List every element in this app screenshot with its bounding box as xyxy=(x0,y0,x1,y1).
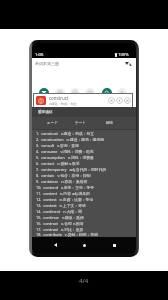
staticText: 1. construct v.建造；构成；创立 xyxy=(36,131,95,136)
button[interactable]: Info xyxy=(85,88,95,98)
button[interactable]: 14. continent n.大陆；洲 xyxy=(32,208,136,214)
button[interactable]: 1. construct v.建造；构成；创立 xyxy=(32,130,136,136)
button[interactable]: 9. container n.容器；集装箱 xyxy=(32,178,136,184)
staticText: 3. consult v.咨询；查阅 xyxy=(36,143,79,148)
button[interactable]: Next xyxy=(124,97,131,104)
staticText: 17. contrast n.对比；差异 xyxy=(36,227,84,232)
staticText: 18. contribute v.贡献；捐助；投稿 xyxy=(36,232,99,237)
button[interactable]: Play xyxy=(116,97,123,104)
button[interactable]: 6. contact n.接触 v.联系 xyxy=(32,160,136,166)
button[interactable]: 18. contribute v.贡献；捐助；投稿 xyxy=(32,232,136,237)
staticText: 解除 xyxy=(106,121,114,126)
button[interactable]: Home xyxy=(77,238,91,252)
button[interactable]: 7. contemporary adj.当代的；同时代的 xyxy=(32,166,136,172)
button[interactable]: 12. contest n.竞赛；比赛；争论 xyxy=(32,196,136,202)
button[interactable]: 5. consumption n.消耗；消费量 xyxy=(32,154,136,160)
button[interactable]: 11. content n.内容 adj.满足的 xyxy=(32,190,136,196)
staticText: 10. contend v.竞争；主张；争夺 xyxy=(36,185,95,190)
button[interactable]: Previous xyxy=(108,97,115,104)
staticText: 4/4 xyxy=(79,277,89,285)
button[interactable]: 8. contain v.包含；容纳；抑制 xyxy=(32,172,136,178)
staticText: construct xyxy=(49,95,69,101)
staticText: 14. continent n.大陆；洲 xyxy=(36,209,82,214)
button[interactable]: Filter xyxy=(39,88,49,98)
button[interactable]: 2. construction n.建造；建筑；建筑物 xyxy=(32,136,136,142)
staticText: 12. contest n.竞赛；比赛；争论 xyxy=(36,197,94,202)
staticText: 9. container n.容器；集装箱 xyxy=(36,179,88,184)
button[interactable]: 15. continue v.继续；延伸 xyxy=(32,214,136,220)
staticText: 100% xyxy=(118,52,129,58)
staticText: 13. context n.上下文；环境 xyxy=(36,203,86,208)
other: Filter menu xyxy=(125,62,132,66)
button[interactable]: 17. contrast n.对比；差异 xyxy=(32,226,136,232)
button[interactable]: Back xyxy=(48,238,62,252)
button[interactable]: Recents xyxy=(107,238,121,252)
button[interactable]: エード xyxy=(38,117,66,129)
staticText: 1:06 xyxy=(35,52,44,58)
staticText: 8. contain v.包含；容纳；抑制 xyxy=(36,173,91,178)
staticText: 11. content n.内容 adj.满足的 xyxy=(36,191,90,196)
staticText: テート xyxy=(75,121,86,126)
button[interactable]: 4. consume v.消耗；消费；吃完 xyxy=(32,148,136,154)
button[interactable]: Settings xyxy=(55,88,65,98)
staticText: 7. contemporary adj.当代的；同时代的 xyxy=(36,167,107,172)
button[interactable]: Search xyxy=(102,88,112,98)
staticText: 16. contract n.合同 v.收缩 xyxy=(36,221,84,226)
button[interactable]: 13. context n.上下文；环境 xyxy=(32,202,136,208)
staticText: 5. consumption n.消耗；消费量 xyxy=(36,155,94,160)
button[interactable]: 解除 xyxy=(95,117,124,129)
staticText: 2. construction n.建造；建筑；建筑物 xyxy=(36,137,105,142)
button[interactable]: 10. contend v.竞争；主张；争夺 xyxy=(32,184,136,190)
button[interactable]: Edit xyxy=(70,88,80,98)
staticText: v.建造；构成；创立 xyxy=(49,102,77,106)
staticText: 重複連結 xyxy=(38,110,53,115)
staticText: 4. consume v.消耗；消费；吃完 xyxy=(36,149,94,154)
button[interactable]: 16. contract n.合同 v.收缩 xyxy=(32,220,136,226)
button[interactable]: Add xyxy=(117,88,127,98)
button[interactable]: テート xyxy=(66,117,95,129)
staticText: エード xyxy=(47,121,58,126)
staticText: 单词本第三册 xyxy=(35,61,59,66)
staticText: 6. contact n.接触 v.联系 xyxy=(36,161,80,166)
staticText: 15. continue v.继续；延伸 xyxy=(36,215,84,220)
button[interactable]: construct xyxy=(33,93,133,108)
button[interactable]: 3. consult v.咨询；查阅 xyxy=(32,142,136,148)
